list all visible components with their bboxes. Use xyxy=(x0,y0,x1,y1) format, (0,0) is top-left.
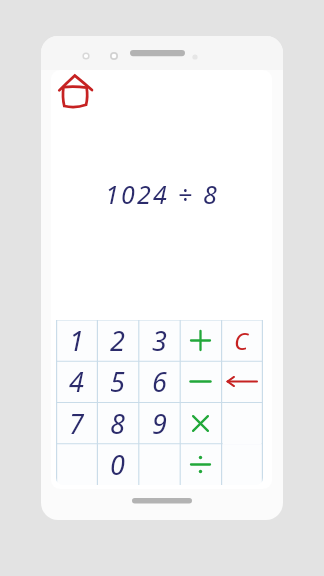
staticText: 1024 ÷ 8 xyxy=(105,177,219,211)
button[interactable]: 1 xyxy=(56,320,97,361)
staticText: 2 xyxy=(110,322,125,359)
button[interactable]: Divide xyxy=(180,444,221,485)
button[interactable]: 9 xyxy=(139,403,180,444)
button[interactable]: 7 xyxy=(56,403,97,444)
staticText: C xyxy=(234,324,249,357)
button[interactable]: 0 xyxy=(97,444,138,485)
button[interactable]: Plus xyxy=(180,320,221,361)
staticText: 4 xyxy=(69,363,84,400)
staticText: 8 xyxy=(110,405,125,442)
button[interactable]: C xyxy=(221,320,262,361)
staticText: 3 xyxy=(152,322,167,359)
button[interactable]: 8 xyxy=(97,403,138,444)
staticText: 9 xyxy=(152,405,167,442)
button[interactable]: Minus xyxy=(180,361,221,402)
staticText: 6 xyxy=(152,363,167,400)
button[interactable]: 5 xyxy=(97,361,138,402)
button[interactable]: Backspace xyxy=(221,361,262,402)
button[interactable]: 2 xyxy=(97,320,138,361)
button[interactable]: Multiply xyxy=(180,403,221,444)
button[interactable]: 3 xyxy=(139,320,180,361)
staticText: 1 xyxy=(69,322,84,359)
staticText: 7 xyxy=(69,405,84,442)
staticText: 0 xyxy=(110,446,125,483)
button[interactable]: 6 xyxy=(139,361,180,402)
button[interactable]: Home xyxy=(57,73,95,110)
button[interactable]: 4 xyxy=(56,361,97,402)
button[interactable]: Equals xyxy=(221,403,262,485)
staticText: 5 xyxy=(110,363,125,400)
